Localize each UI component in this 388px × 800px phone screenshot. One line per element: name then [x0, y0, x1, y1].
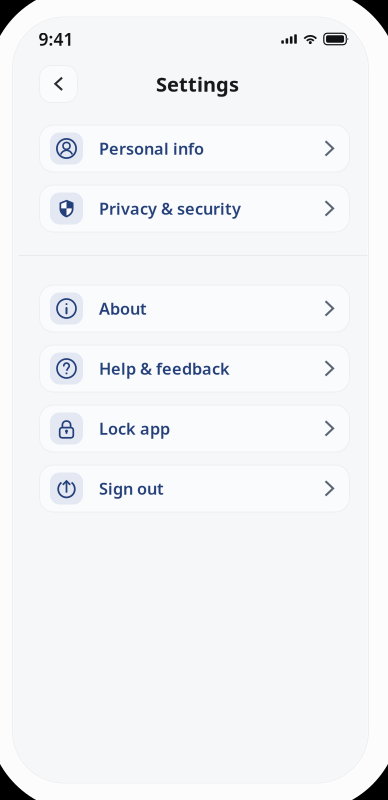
- button[interactable]: Personal info: [39, 125, 349, 172]
- staticText: About: [99, 297, 147, 320]
- button[interactable]: Privacy & security: [39, 185, 349, 232]
- button[interactable]: About: [39, 285, 349, 332]
- staticText: Sign out: [99, 477, 164, 500]
- staticText: Lock app: [99, 417, 170, 440]
- staticText: Help & feedback: [99, 357, 230, 380]
- button[interactable]: Help & feedback: [39, 345, 349, 392]
- staticText: Settings: [156, 71, 239, 97]
- button[interactable]: Sign out: [39, 465, 349, 512]
- staticText: 9:41: [38, 27, 73, 50]
- staticText: Privacy & security: [99, 197, 241, 220]
- button[interactable]: Back: [39, 65, 77, 102]
- staticText: Personal info: [99, 137, 204, 160]
- button[interactable]: Lock app: [39, 405, 349, 452]
